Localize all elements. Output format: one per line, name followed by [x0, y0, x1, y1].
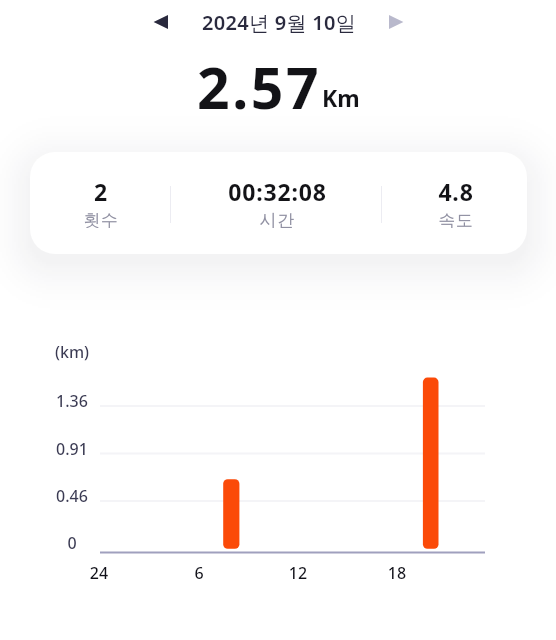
staticText: 0 [37, 532, 107, 554]
button[interactable]: 00:32:08 [171, 176, 381, 231]
button[interactable]: 4.8 [382, 176, 527, 231]
staticText: 2 [94, 176, 108, 207]
staticText: 시간 [259, 210, 295, 231]
staticText: 6 [174, 562, 224, 584]
button[interactable]: Previous day [144, 5, 178, 39]
button[interactable]: Next day [378, 5, 412, 39]
staticText: 4.8 [438, 176, 474, 207]
button[interactable]: 2 [30, 176, 170, 231]
button[interactable]: 2 [30, 152, 527, 254]
staticText: 0.46 [37, 485, 107, 507]
staticText: (km) [37, 341, 107, 363]
staticText: 18 [372, 562, 422, 584]
staticText: 2.57 [197, 48, 322, 126]
staticText: 00:32:08 [228, 176, 327, 207]
staticText: 1.36 [37, 390, 107, 412]
staticText: 0.91 [37, 438, 107, 460]
staticText: 속도 [438, 210, 474, 231]
staticText: 횟수 [83, 210, 119, 231]
staticText: 2024년 9월 10일 [202, 9, 357, 36]
staticText: 12 [273, 562, 323, 584]
staticText: Km [322, 82, 360, 113]
staticText: 24 [74, 562, 124, 584]
